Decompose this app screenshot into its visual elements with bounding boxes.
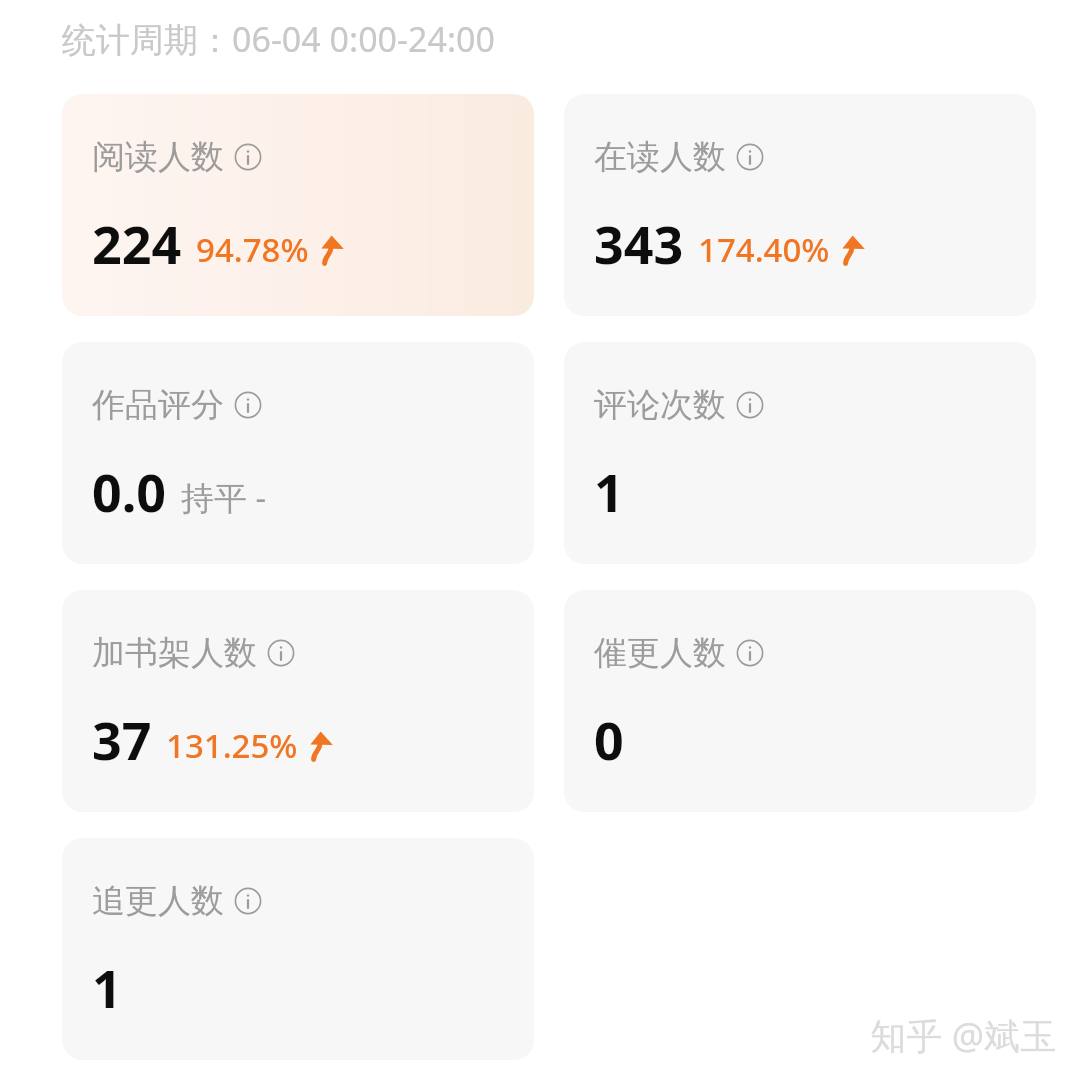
staticText: 1 bbox=[594, 456, 624, 527]
button[interactable]: More info bbox=[266, 638, 296, 668]
staticText: 追更人数 bbox=[92, 880, 224, 922]
staticText: 224 bbox=[92, 208, 182, 279]
staticText: 知乎 @斌玉 bbox=[870, 1011, 1056, 1060]
button[interactable]: 阅读人数 bbox=[62, 94, 534, 316]
staticText: 1 bbox=[92, 952, 122, 1023]
staticText: 作品评分 bbox=[92, 384, 224, 426]
button[interactable]: More info bbox=[735, 638, 765, 668]
staticText: 加书架人数 bbox=[92, 632, 257, 674]
button[interactable]: 在读人数 bbox=[564, 94, 1036, 316]
button[interactable]: More info bbox=[735, 142, 765, 172]
button[interactable]: 加书架人数 bbox=[62, 590, 534, 812]
button[interactable]: More info bbox=[233, 142, 263, 172]
button[interactable]: 评论次数 bbox=[564, 342, 1036, 564]
staticText: 阅读人数 bbox=[92, 136, 224, 178]
button[interactable]: More info bbox=[233, 390, 263, 420]
staticText: 174.40% bbox=[698, 227, 830, 272]
staticText: 37 bbox=[92, 704, 152, 775]
button[interactable]: 催更人数 bbox=[564, 590, 1036, 812]
staticText: 统计周期：06-04 0:00-24:00 bbox=[62, 16, 495, 62]
button[interactable]: More info bbox=[233, 886, 263, 916]
staticText: 0 bbox=[594, 704, 624, 775]
staticText: 0.0 bbox=[92, 456, 167, 527]
staticText: 评论次数 bbox=[594, 384, 726, 426]
button[interactable]: 作品评分 bbox=[62, 342, 534, 564]
staticText: 343 bbox=[594, 208, 684, 279]
staticText: 131.25% bbox=[166, 723, 298, 768]
staticText: 催更人数 bbox=[594, 632, 726, 674]
staticText: 94.78% bbox=[196, 227, 309, 272]
button[interactable]: More info bbox=[735, 390, 765, 420]
button[interactable]: 追更人数 bbox=[62, 838, 534, 1060]
staticText: 持平 - bbox=[181, 475, 267, 520]
staticText: 在读人数 bbox=[594, 136, 726, 178]
